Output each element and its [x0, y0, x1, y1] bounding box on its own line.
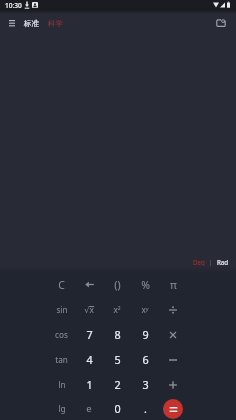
- other: Backspace: [75, 272, 103, 297]
- button[interactable]: 8: [103, 322, 131, 347]
- staticText: 8: [114, 327, 121, 342]
- button[interactable]: 4: [75, 347, 103, 372]
- button[interactable]: C: [48, 272, 75, 297]
- staticText: sin: [56, 304, 68, 315]
- staticText: |: [209, 258, 213, 266]
- staticText: Deg: [193, 258, 205, 266]
- button[interactable]: (): [103, 272, 131, 297]
- staticText: 6: [142, 352, 149, 367]
- button[interactable]: Plus: [159, 372, 187, 397]
- button[interactable]: Equals: [159, 397, 187, 420]
- button[interactable]: 标准: [22, 16, 41, 31]
- staticText: xʸ: [141, 304, 149, 315]
- button[interactable]: x²: [103, 297, 131, 322]
- button[interactable]: 9: [131, 322, 159, 347]
- button[interactable]: .: [131, 397, 159, 420]
- staticText: 9: [142, 327, 149, 342]
- staticText: %: [141, 278, 150, 292]
- other: Minus: [168, 355, 178, 365]
- button[interactable]: 3: [131, 372, 159, 397]
- button[interactable]: Deg: [192, 256, 206, 268]
- button[interactable]: 7: [75, 322, 103, 347]
- button[interactable]: tan: [48, 347, 75, 372]
- staticText: 7: [86, 327, 93, 342]
- other: Divide: [168, 305, 178, 315]
- button[interactable]: Multiply: [159, 322, 187, 347]
- staticText: cos: [55, 329, 68, 340]
- staticText: tan: [55, 354, 68, 365]
- button[interactable]: 0: [103, 397, 131, 420]
- staticText: lg: [58, 403, 66, 414]
- staticText: 4: [86, 352, 93, 367]
- button[interactable]: 6: [131, 347, 159, 372]
- other: Plus: [168, 380, 178, 390]
- other: Equals: [163, 399, 183, 419]
- button[interactable]: ln: [48, 372, 75, 397]
- staticText: Rad: [217, 258, 229, 266]
- button[interactable]: e: [75, 397, 103, 420]
- button[interactable]: 科学: [46, 16, 65, 31]
- staticText: 1: [86, 377, 93, 392]
- button[interactable]: lg: [48, 397, 75, 420]
- other: Multiply: [168, 330, 178, 340]
- staticText: (): [114, 278, 121, 292]
- button[interactable]: Rad: [216, 256, 230, 268]
- button[interactable]: Backspace: [75, 272, 103, 297]
- button[interactable]: Picture in picture: [213, 15, 229, 31]
- button[interactable]: 1: [75, 372, 103, 397]
- button[interactable]: xʸ: [131, 297, 159, 322]
- button[interactable]: Menu: [4, 15, 20, 31]
- staticText: x²: [113, 304, 121, 315]
- staticText: √x: [84, 304, 94, 315]
- staticText: 0: [114, 401, 121, 416]
- staticText: 5: [114, 352, 121, 367]
- staticText: ln: [58, 379, 66, 390]
- staticText: C: [58, 278, 65, 292]
- button[interactable]: π: [159, 272, 187, 297]
- staticText: 科学: [48, 19, 63, 28]
- staticText: e: [86, 402, 92, 415]
- staticText: 2: [114, 377, 121, 392]
- button[interactable]: sin: [48, 297, 75, 322]
- button[interactable]: cos: [48, 322, 75, 347]
- staticText: .: [144, 401, 147, 416]
- button[interactable]: Divide: [159, 297, 187, 322]
- button[interactable]: 2: [103, 372, 131, 397]
- button[interactable]: √x: [75, 297, 103, 322]
- staticText: 3: [142, 377, 149, 392]
- staticText: π: [170, 278, 177, 292]
- button[interactable]: Minus: [159, 347, 187, 372]
- button[interactable]: 5: [103, 347, 131, 372]
- staticText: 10:30: [5, 1, 22, 10]
- button[interactable]: %: [131, 272, 159, 297]
- staticText: 标准: [24, 19, 39, 28]
